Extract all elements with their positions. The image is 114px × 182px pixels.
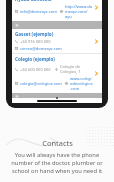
other: Open contact <box>93 4 100 11</box>
button[interactable]: Section <box>12 93 102 98</box>
staticText: +34 916 000 000 <box>20 39 51 44</box>
staticText: You will always have the phone number of… <box>5 151 109 175</box>
button[interactable]: Ayuda domicilio <box>12 0 102 21</box>
staticText: Colegio de Colegios, 1 <box>60 64 93 74</box>
staticText: Colegio (ejemplo) <box>15 56 55 62</box>
staticText: Gasset (ejemplo) <box>15 31 54 37</box>
staticText: +34 600 000 000 <box>20 67 51 72</box>
other: Section <box>15 23 19 27</box>
other: Open contact <box>93 70 100 77</box>
other: Section <box>15 94 19 98</box>
staticText: info@domexyz.com <box>20 9 57 14</box>
staticText: colegio@colegios.com <box>20 81 62 86</box>
button[interactable]: Colegio (ejemplo) <box>12 54 102 93</box>
staticText: Ayuda domicilio <box>15 0 52 2</box>
staticText: correo@domexyz.com <box>20 46 62 51</box>
button[interactable]: Gasset (ejemplo) <box>12 29 102 53</box>
button[interactable]: Section <box>12 21 102 29</box>
staticText: Contacts <box>42 138 73 148</box>
other: Open contact <box>93 38 100 45</box>
staticText: www.colegiodecolegios.com <box>70 76 93 91</box>
staticText: http://www.domexyz.com/ayu <box>65 4 93 19</box>
